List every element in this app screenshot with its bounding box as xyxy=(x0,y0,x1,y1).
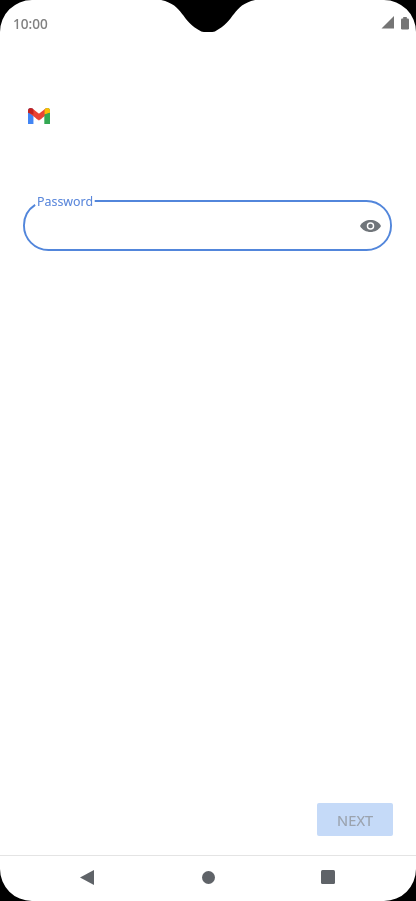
staticText: Password xyxy=(37,193,94,210)
button[interactable]: Password xyxy=(23,200,392,251)
button[interactable]: Show password xyxy=(358,214,382,238)
staticText: 10:00 xyxy=(13,14,48,33)
button[interactable]: Home xyxy=(184,854,232,900)
button[interactable]: Back xyxy=(63,854,111,900)
button[interactable]: NEXT xyxy=(317,803,393,836)
button[interactable]: Recent apps xyxy=(304,854,352,900)
staticText: NEXT xyxy=(337,810,374,830)
